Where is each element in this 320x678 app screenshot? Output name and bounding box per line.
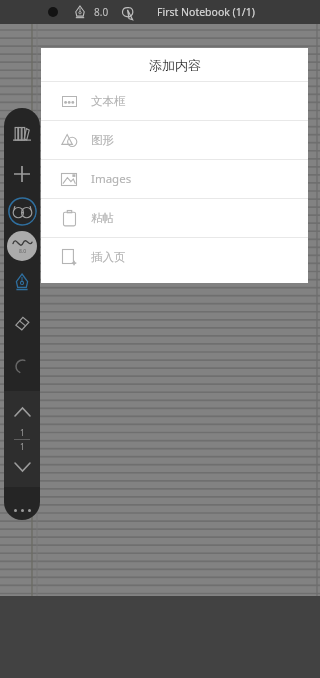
button[interactable]: Next page	[8, 457, 36, 477]
staticText: Images	[91, 171, 132, 187]
button[interactable]: Pen colour	[44, 3, 62, 21]
button[interactable]: Previous page	[8, 402, 36, 422]
staticText: 插入页	[91, 250, 126, 264]
staticText: 1	[20, 441, 25, 452]
staticText: First Notebook (1/1)	[157, 5, 255, 19]
button[interactable]: Fountain pen	[7, 267, 37, 297]
staticText: 图形	[91, 133, 114, 147]
button[interactable]: Pencil, size 8.0	[7, 231, 37, 261]
button[interactable]: First Notebook (1/1)	[157, 5, 255, 19]
button[interactable]: Notebooks	[6, 118, 38, 150]
button[interactable]: 粘帖	[41, 199, 308, 237]
button[interactable]: Highlighter	[6, 307, 38, 339]
staticText: 粘帖	[91, 211, 114, 225]
button[interactable]: Add content	[6, 158, 38, 190]
button[interactable]: Lasso select	[117, 2, 137, 22]
staticText: 文本框	[91, 94, 126, 108]
button[interactable]: Undo	[7, 351, 37, 381]
button[interactable]: 插入页	[41, 238, 308, 276]
button[interactable]: 图形	[41, 121, 308, 159]
staticText: 添加内容	[149, 57, 201, 73]
button[interactable]: Pen tool	[71, 3, 89, 21]
staticText: 8.0	[94, 5, 109, 19]
staticText: 8.0	[19, 248, 27, 255]
button[interactable]: More options	[6, 501, 38, 520]
button[interactable]: Reading mode	[7, 196, 37, 226]
staticText: 1	[20, 427, 25, 438]
button[interactable]: 8.0	[94, 5, 109, 19]
button[interactable]: Images	[41, 160, 308, 198]
button[interactable]: 文本框	[41, 82, 308, 120]
